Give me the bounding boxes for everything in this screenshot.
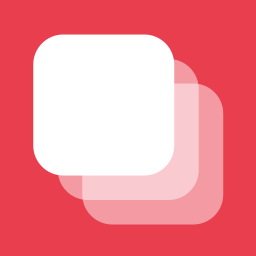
button[interactable]: Card stack <box>33 33 223 223</box>
